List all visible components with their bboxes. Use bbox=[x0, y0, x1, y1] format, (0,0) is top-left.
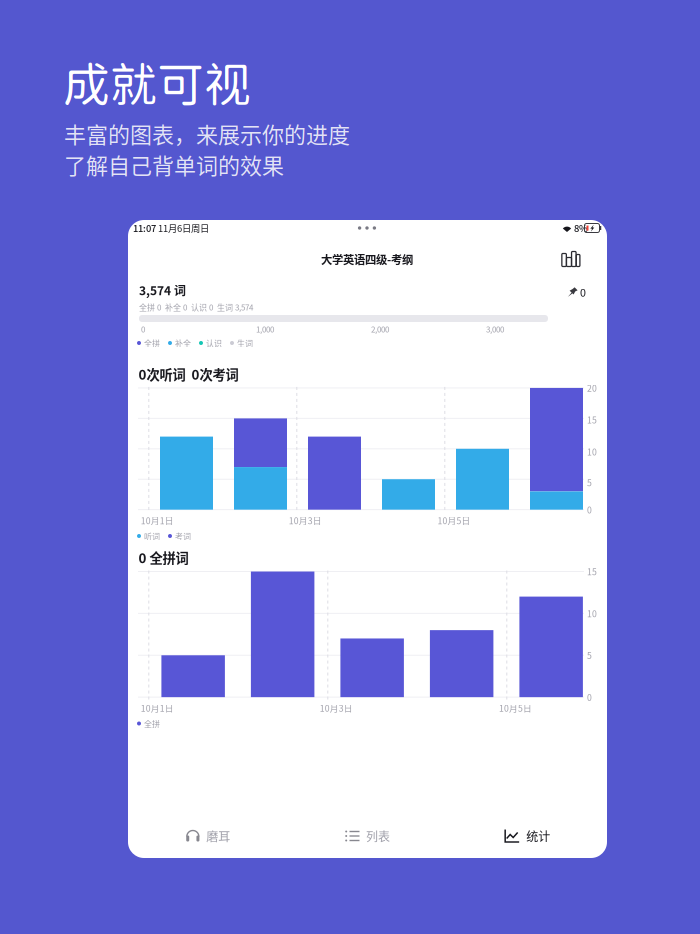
staticText: 10 bbox=[587, 607, 597, 620]
staticText: 5 bbox=[587, 476, 592, 489]
staticText: 11:07 bbox=[133, 221, 156, 235]
staticText: 听词 bbox=[144, 530, 160, 542]
button[interactable]: 词书 bbox=[562, 250, 580, 266]
staticText: 10月3日 bbox=[320, 702, 353, 714]
staticText: 认识 bbox=[206, 337, 222, 349]
staticText: 8% bbox=[574, 221, 588, 235]
staticText: 0 bbox=[587, 503, 592, 516]
staticText: 全拼 bbox=[144, 718, 160, 729]
staticText: 15 bbox=[587, 413, 597, 426]
staticText: 全拼 bbox=[144, 337, 160, 349]
staticText: 10月3日 bbox=[289, 514, 322, 527]
staticText: 0 bbox=[580, 284, 586, 300]
staticText: 全拼 0 补全 0 认识 0 生词 3,574 bbox=[139, 301, 253, 313]
staticText: 考词 bbox=[175, 530, 191, 542]
staticText: 10月5日 bbox=[438, 514, 471, 527]
staticText: 3,000 bbox=[486, 323, 504, 335]
staticText: 成就可视 bbox=[63, 56, 251, 112]
button[interactable]: 列表 bbox=[288, 814, 447, 858]
staticText: 15 bbox=[587, 565, 597, 578]
staticText: 0 全拼词 bbox=[138, 548, 188, 567]
staticText: 大学英语四级-考纲 bbox=[321, 251, 413, 267]
button[interactable]: 统计 bbox=[447, 814, 607, 858]
staticText: 20 bbox=[587, 382, 597, 394]
staticText: 3,574 词 bbox=[139, 281, 186, 299]
staticText: 0 bbox=[141, 323, 145, 335]
staticText: 生词 bbox=[237, 337, 253, 349]
staticText: 统计 bbox=[526, 827, 550, 845]
staticText: 0 bbox=[587, 691, 592, 703]
staticText: 磨耳 bbox=[206, 827, 230, 845]
staticText: 10月5日 bbox=[499, 702, 532, 714]
staticText: 了解自己背单词的效果 bbox=[64, 149, 284, 180]
staticText: 11月6日周日 bbox=[158, 221, 209, 235]
staticText: 1,000 bbox=[256, 323, 274, 335]
button[interactable]: 磨耳 bbox=[128, 814, 288, 858]
staticText: 列表 bbox=[366, 827, 390, 845]
staticText: 丰富的图表，来展示你的进度 bbox=[64, 118, 350, 149]
staticText: 补全 bbox=[175, 337, 191, 349]
staticText: 10月1日 bbox=[141, 702, 174, 714]
staticText: 10 bbox=[587, 445, 597, 458]
staticText: 2,000 bbox=[371, 323, 389, 335]
staticText: 5 bbox=[587, 649, 592, 661]
staticText: 10月1日 bbox=[141, 514, 174, 527]
button[interactable]: 0 bbox=[556, 285, 586, 299]
staticText: 0次听词 0次考词 bbox=[138, 364, 238, 384]
